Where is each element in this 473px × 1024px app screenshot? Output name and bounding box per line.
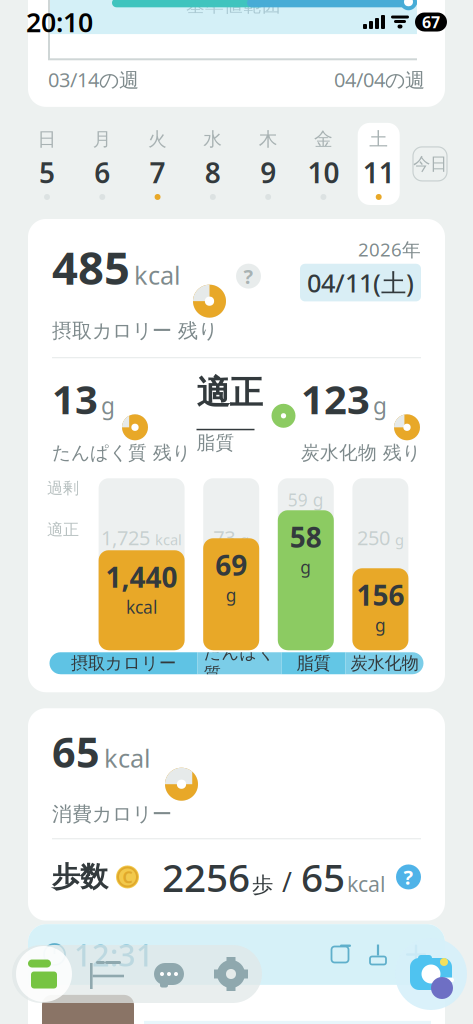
staticText: kcal: [134, 258, 181, 292]
button[interactable]: 今日: [413, 147, 447, 181]
staticText: g: [373, 390, 387, 421]
staticText: 過剰: [47, 478, 79, 498]
staticText: 木: [259, 128, 278, 151]
staticText: 7: [150, 154, 166, 191]
staticText: g: [101, 390, 115, 421]
staticText: 59 g: [288, 488, 324, 511]
staticText: 9: [260, 154, 276, 191]
staticText: 土: [369, 128, 388, 151]
staticText: 156: [356, 576, 404, 613]
staticText: 日: [37, 128, 56, 151]
staticText: g: [300, 555, 311, 578]
staticText: 69: [215, 546, 247, 583]
staticText: 04/04の週: [334, 66, 425, 93]
staticText: 123: [301, 372, 370, 425]
staticText: ?: [243, 263, 253, 289]
button[interactable]: 食事を撮影: [395, 938, 467, 1010]
staticText: 基準値範囲: [186, 0, 281, 17]
staticText: 485: [52, 237, 130, 297]
button[interactable]: ヘルプ: [396, 864, 421, 889]
staticText: 20:10: [26, 4, 93, 40]
button[interactable]: 共有: [365, 941, 391, 967]
staticText: 炭水化物 残り: [301, 441, 421, 464]
staticText: kcal: [151, 530, 182, 549]
staticText: たんぱく質 残り: [52, 441, 191, 464]
button[interactable]: 金: [302, 123, 344, 205]
staticText: 今日: [413, 153, 447, 175]
staticText: 58: [290, 518, 322, 555]
staticText: 12:31: [74, 934, 154, 975]
staticText: g: [391, 530, 404, 549]
staticText: 1,725: [101, 524, 150, 551]
staticText: 火: [148, 128, 167, 151]
staticText: 適正: [47, 520, 79, 540]
button[interactable]: グラフ: [76, 945, 138, 1003]
staticText: 65: [301, 851, 345, 903]
staticText: 67: [422, 11, 440, 33]
button[interactable]: 設定: [200, 945, 262, 1003]
staticText: 消費カロリー: [52, 802, 172, 826]
staticText: 1,440: [106, 558, 178, 595]
staticText: 10: [307, 154, 339, 191]
staticText: ?: [403, 864, 413, 890]
staticText: /: [275, 864, 299, 899]
staticText: kcal: [104, 741, 151, 775]
button[interactable]: ヘルプ: [236, 264, 261, 289]
button[interactable]: 木: [247, 123, 289, 205]
staticText: 2026年: [358, 237, 421, 262]
button[interactable]: メッセージ: [138, 945, 200, 1003]
staticText: g: [375, 613, 386, 636]
staticText: 脂質: [196, 431, 234, 454]
staticText: 04/11(土): [307, 266, 414, 299]
staticText: 03/14の週: [48, 66, 139, 93]
button[interactable]: 土: [358, 123, 400, 205]
staticText: 適正: [196, 372, 262, 413]
staticText: g: [226, 583, 237, 606]
staticText: 月: [93, 128, 112, 151]
staticText: 金: [314, 128, 333, 151]
staticText: 6: [94, 154, 110, 191]
button[interactable]: 編集: [327, 941, 353, 967]
button[interactable]: 月: [81, 123, 123, 205]
staticText: 脂質: [296, 653, 330, 674]
staticText: kcal: [126, 595, 157, 618]
staticText: 水: [203, 128, 222, 151]
staticText: kcal: [347, 869, 386, 898]
button[interactable]: 火: [137, 123, 179, 205]
staticText: 摂取カロリー: [71, 653, 176, 674]
button[interactable]: ホーム: [12, 945, 76, 1003]
button[interactable]: 04/11(土): [300, 264, 421, 301]
staticText: 歩数: [52, 860, 108, 894]
staticText: 炭水化物: [350, 653, 418, 674]
staticText: 65: [52, 724, 100, 779]
staticText: 2256: [162, 851, 250, 903]
staticText: 8: [205, 154, 221, 191]
staticText: 5: [39, 154, 55, 191]
staticText: C: [122, 866, 132, 887]
button[interactable]: 水: [192, 123, 234, 205]
staticText: 13: [52, 372, 98, 425]
staticText: 11: [363, 154, 395, 191]
staticText: 歩: [252, 872, 273, 898]
button[interactable]: 日: [26, 123, 68, 205]
staticText: 250: [357, 524, 390, 551]
staticText: 73: [213, 524, 235, 551]
button[interactable]: 閉じる: [403, 941, 429, 967]
staticText: たんぱく質: [203, 642, 275, 684]
staticText: g: [236, 530, 249, 549]
staticText: 摂取カロリー 残り: [52, 319, 218, 343]
